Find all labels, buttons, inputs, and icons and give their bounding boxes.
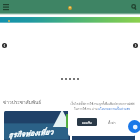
button[interactable]: ตั้งค่า: [102, 118, 122, 126]
button[interactable]: Menu: [0, 1, 11, 12]
staticText: ในการใช้งาน อ่าน: [74, 107, 98, 112]
staticText: ธุรกิจท่องเที่ยว: [8, 126, 53, 140]
button[interactable]: ข่าวประชาสัมพันธ์: [3, 98, 42, 106]
button[interactable]: Search: [128, 1, 139, 12]
button[interactable]: ยอมรับ: [77, 118, 97, 126]
button[interactable]: ธุรกิจท่องเที่ยว: [4, 111, 70, 140]
button[interactable]: นโยบายความเป็นส่วนตัว: [98, 107, 131, 112]
button[interactable]: [72, 111, 135, 140]
staticText: ยอมรับ: [82, 120, 92, 125]
button[interactable]: Next: [131, 41, 140, 50]
staticText: เว็บไซต์นี้มีการใช้งานคุกกี้เพื่อเพิ่มปร…: [70, 102, 135, 107]
button[interactable]: Previous: [0, 41, 9, 50]
button[interactable]: [0, 15, 140, 25]
button[interactable]: Chat: [128, 120, 140, 133]
staticText: ตั้งค่า: [108, 120, 116, 125]
